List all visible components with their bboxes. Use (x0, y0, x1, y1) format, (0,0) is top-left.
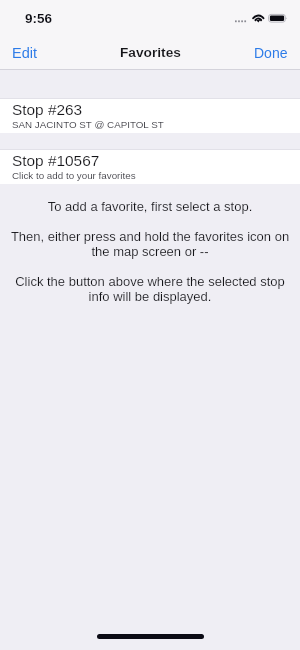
button[interactable]: Done (242, 39, 300, 70)
button[interactable]: Stop #10567 (0, 150, 300, 184)
staticText: Stop #263 (12, 101, 83, 118)
button[interactable]: Stop #263 (0, 99, 300, 133)
staticText: 9:56 (25, 11, 53, 26)
staticText: Click to add to your favorites (12, 170, 136, 181)
staticText: SAN JACINTO ST @ CAPITOL ST (12, 119, 164, 130)
staticText: Edit (12, 45, 37, 61)
staticText: Favorites (120, 45, 181, 60)
staticText: To add a favorite, first select a stop. … (10, 199, 290, 304)
staticText: Stop #10567 (12, 152, 100, 169)
button[interactable]: Edit (0, 39, 49, 70)
staticText: Done (254, 45, 288, 61)
